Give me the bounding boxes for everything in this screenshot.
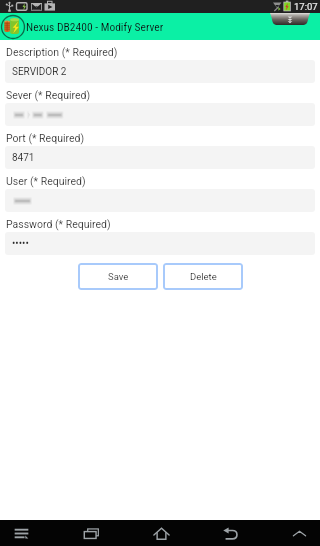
- button[interactable]: •••••: [5, 232, 315, 255]
- staticText: SERVIDOR 2: [12, 66, 67, 78]
- button[interactable]: More options: [270, 13, 310, 25]
- button[interactable]: Back: [207, 520, 253, 546]
- staticText: Port (* Required): [6, 132, 85, 144]
- staticText: 17:07: [294, 1, 318, 12]
- button[interactable]: Menu: [0, 520, 44, 546]
- staticText: Delete: [190, 271, 217, 282]
- button[interactable]: Save: [78, 263, 158, 290]
- staticText: Password (* Required): [6, 218, 111, 230]
- staticText: Description (* Required): [6, 46, 118, 58]
- button[interactable]: Show keyboard: [276, 520, 320, 546]
- button[interactable]: [5, 103, 315, 126]
- staticText: User (* Required): [6, 175, 86, 187]
- staticText: 8471: [12, 152, 35, 164]
- button[interactable]: SERVIDOR 2: [5, 60, 315, 83]
- button[interactable]: Home: [138, 520, 184, 546]
- staticText: •••••: [12, 238, 29, 250]
- staticText: Sever (* Required): [6, 89, 91, 101]
- button[interactable]: Delete: [163, 263, 243, 290]
- button[interactable]: 8471: [5, 146, 315, 169]
- staticText: Save: [108, 271, 129, 282]
- button[interactable]: Recent apps: [68, 520, 114, 546]
- staticText: Nexus DB2400 - Modify Server: [26, 20, 164, 33]
- button[interactable]: [5, 189, 315, 212]
